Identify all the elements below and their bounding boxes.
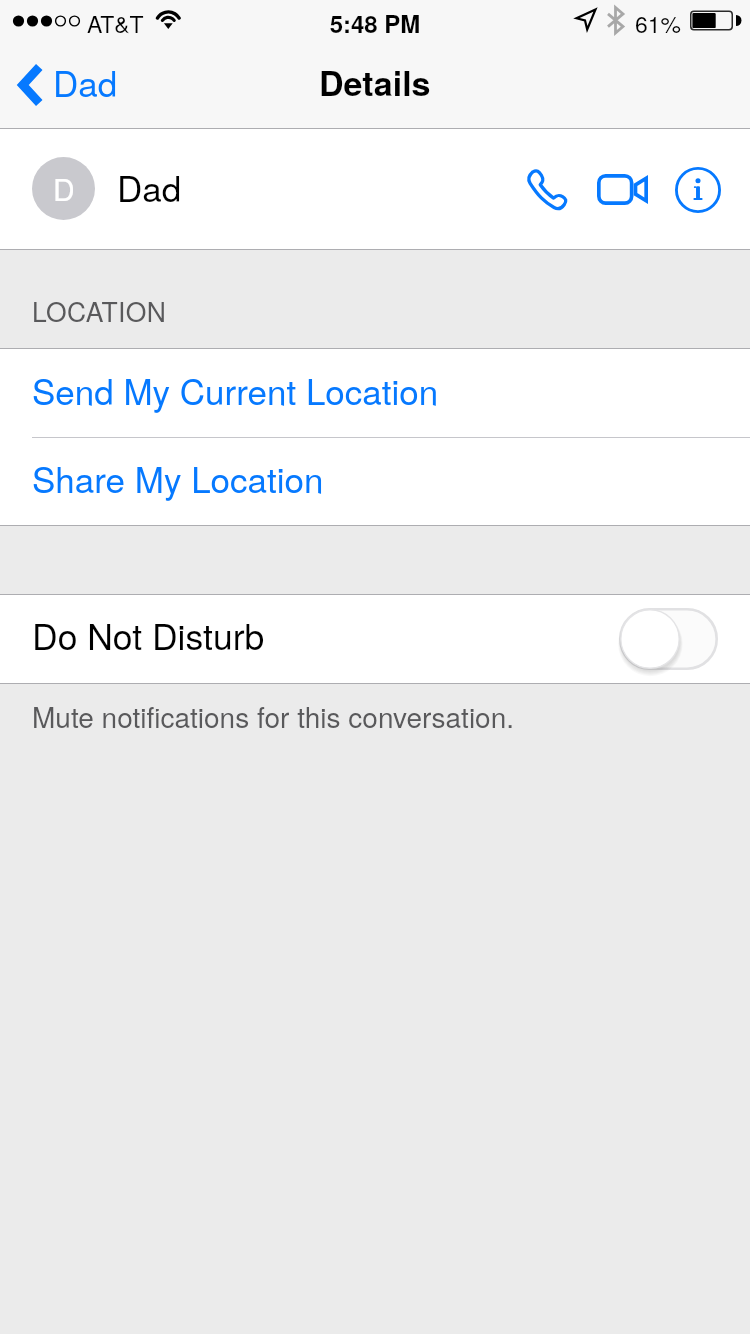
staticText: AT&T xyxy=(87,7,144,40)
button[interactable]: Do Not Disturb xyxy=(0,595,750,683)
button[interactable]: Share My Location xyxy=(0,437,750,525)
staticText: Share My Location xyxy=(32,453,324,503)
staticText: Details xyxy=(319,58,431,107)
staticText: D xyxy=(53,167,75,210)
staticText: 61% xyxy=(635,7,682,40)
staticText: LOCATION xyxy=(32,292,167,330)
staticText: Do Not Disturb xyxy=(32,609,265,660)
staticText: Mute notifications for this conversation… xyxy=(32,696,515,736)
button[interactable]: Dad xyxy=(16,60,118,110)
staticText: Send My Current Location xyxy=(32,365,439,415)
button[interactable]: Call xyxy=(512,155,580,225)
staticText: 5:48 PM xyxy=(0,6,750,40)
button[interactable]: Contact info xyxy=(665,155,731,225)
staticText: Dad xyxy=(117,162,182,212)
button[interactable]: Do Not Disturb toggle xyxy=(619,608,718,670)
staticText: Dad xyxy=(53,57,118,107)
button[interactable]: D xyxy=(0,129,470,250)
button[interactable]: Send My Current Location xyxy=(0,349,750,437)
button[interactable]: FaceTime video xyxy=(585,154,659,224)
